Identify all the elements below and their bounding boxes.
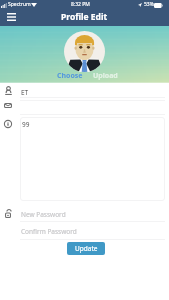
button[interactable]: About	[20, 117, 165, 201]
staticText: 53%	[144, 1, 154, 8]
button[interactable]: Name	[20, 84, 165, 97]
staticText: Choose	[57, 71, 83, 81]
button[interactable]: Upload	[91, 71, 120, 81]
button[interactable]: Confirm password	[20, 225, 165, 239]
staticText: ET	[21, 88, 29, 97]
staticText: New Password	[21, 210, 66, 219]
button[interactable]: Choose	[55, 71, 85, 81]
button[interactable]: New password	[20, 205, 165, 221]
button[interactable]: Email	[20, 100, 165, 114]
staticText: Update	[75, 244, 98, 253]
staticText: 8:32 PM	[71, 1, 90, 8]
staticText: Upload	[93, 71, 118, 81]
staticText: Profile Edit	[61, 11, 108, 23]
staticText: 99	[22, 120, 30, 129]
button[interactable]: Update	[67, 242, 105, 255]
staticText: Confirm Password	[21, 227, 77, 236]
button[interactable]: Profile photo	[64, 31, 105, 72]
staticText: Spectrum	[8, 1, 31, 8]
button[interactable]: Menu	[4, 10, 19, 23]
